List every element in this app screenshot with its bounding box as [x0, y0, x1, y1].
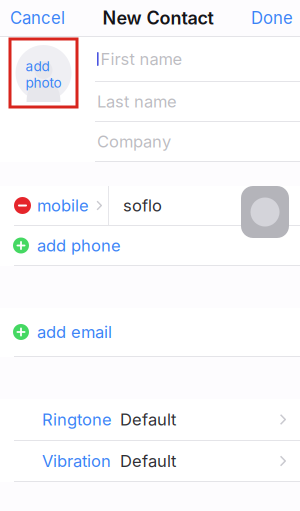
staticText: Default [120, 451, 176, 471]
button[interactable]: Add photo [10, 39, 77, 107]
staticText: Ringtone [42, 409, 112, 429]
staticText: Company [97, 131, 171, 151]
button[interactable]: add email [0, 308, 300, 356]
staticText: Default [120, 409, 176, 429]
staticText: First name [101, 49, 183, 69]
staticText: mobile [37, 195, 89, 215]
button[interactable]: Vibration [0, 441, 300, 481]
staticText: Vibration [42, 451, 111, 471]
staticText: Last name [97, 91, 177, 111]
button[interactable]: Done [251, 0, 300, 36]
staticText: add photo [25, 58, 61, 91]
button[interactable]: mobile [0, 186, 108, 225]
staticText: Done [251, 8, 293, 28]
staticText: soflo [123, 195, 162, 215]
staticText: Cancel [10, 8, 65, 28]
staticText: add phone [37, 235, 121, 255]
button[interactable]: Cancel [0, 0, 65, 36]
staticText: New Contact [102, 7, 213, 29]
button[interactable]: Ringtone [0, 399, 300, 440]
staticText: add email [37, 322, 112, 342]
button[interactable]: add phone [0, 226, 300, 265]
